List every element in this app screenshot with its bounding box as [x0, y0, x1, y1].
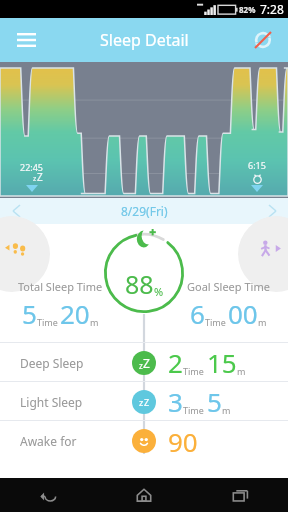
staticText: 88	[125, 267, 154, 301]
button[interactable]: Sync disabled	[246, 23, 280, 57]
staticText: Z	[143, 355, 150, 371]
button[interactable]: Sleep score 88 percent	[103, 232, 185, 314]
button[interactable]: Deep Sleep	[0, 343, 288, 382]
staticText: m	[258, 316, 267, 328]
staticText: z	[139, 396, 144, 408]
staticText: Time	[183, 365, 204, 377]
staticText: Awake for	[20, 433, 77, 449]
button[interactable]: Home	[96, 478, 192, 512]
staticText: Time	[205, 316, 226, 328]
staticText: 2	[168, 345, 183, 380]
staticText: %	[154, 284, 164, 299]
staticText: Time	[37, 316, 58, 328]
staticText: 6	[190, 296, 205, 331]
button[interactable]: Menu	[8, 22, 44, 58]
staticText: 3	[168, 384, 183, 419]
staticText: 6:15	[248, 159, 266, 171]
button[interactable]: Steps	[0, 216, 50, 292]
staticText: Z	[144, 396, 150, 408]
staticText: 15	[207, 345, 237, 380]
staticText: m	[222, 404, 231, 416]
staticText: m	[90, 316, 99, 328]
staticText: 22:45	[20, 161, 44, 173]
staticText: 5	[207, 384, 222, 419]
staticText: z	[139, 360, 143, 371]
button[interactable]: Light Sleep	[0, 382, 288, 421]
staticText: Deep Sleep	[20, 355, 84, 371]
button[interactable]: Previous day	[0, 198, 32, 224]
staticText: z	[33, 174, 37, 184]
button[interactable]: Next day	[256, 198, 288, 224]
button[interactable]: 8/29(Fri)	[121, 203, 168, 219]
staticText: 5	[22, 296, 37, 331]
staticText: Light Sleep	[20, 394, 83, 410]
button[interactable]: Back	[0, 478, 96, 512]
button[interactable]: Recents	[192, 478, 288, 512]
staticText: 00	[228, 296, 258, 331]
staticText: 20	[60, 296, 90, 331]
staticText: Time	[183, 404, 204, 416]
staticText: Goal Sleep Time	[187, 279, 270, 294]
staticText: 82%	[239, 4, 256, 15]
staticText: 90	[168, 424, 198, 459]
staticText: m	[237, 365, 246, 377]
button[interactable]: Activity	[238, 216, 288, 292]
staticText: Total Sleep Time	[18, 279, 103, 294]
button[interactable]: Awake for	[0, 421, 288, 461]
staticText: Z	[37, 170, 43, 184]
staticText: Sleep Detail	[100, 29, 189, 51]
staticText: 7:28	[260, 1, 284, 17]
